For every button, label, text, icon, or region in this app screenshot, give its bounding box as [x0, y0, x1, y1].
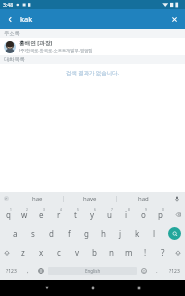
button[interactable]: 9 [135, 205, 152, 224]
button[interactable]: have [64, 192, 116, 205]
button[interactable]: Expand [0, 192, 12, 205]
staticText: 대화목록 [4, 56, 25, 63]
button[interactable]: h [95, 224, 112, 243]
button[interactable]: k [129, 224, 146, 243]
staticText: 검색 결과가 없습니다. [66, 69, 119, 76]
staticText: n [109, 247, 114, 258]
button[interactable]: Clear [163, 9, 185, 29]
staticText: d [49, 228, 54, 239]
button[interactable]: 0 [152, 205, 169, 224]
button[interactable]: Recents [116, 280, 162, 296]
staticText: k [135, 228, 140, 239]
button[interactable]: ! [137, 243, 154, 262]
button[interactable]: c [50, 243, 68, 262]
button[interactable]: n [103, 243, 120, 262]
button[interactable]: English [48, 267, 137, 275]
staticText: 홍배연 [과장] [19, 39, 53, 47]
button[interactable]: Language [34, 262, 48, 280]
button[interactable]: j [112, 224, 129, 243]
button[interactable]: Back [24, 280, 70, 296]
button[interactable]: Home [70, 280, 116, 296]
staticText: z [21, 247, 25, 258]
staticText: 4 [60, 208, 62, 212]
button[interactable]: z [14, 243, 32, 262]
staticText: r [57, 209, 61, 220]
staticText: ! [144, 247, 147, 258]
staticText: q [6, 209, 11, 220]
staticText: 9 [145, 208, 147, 212]
staticText: ?123 [6, 268, 17, 275]
button[interactable]: g [78, 224, 95, 243]
staticText: , [27, 267, 29, 275]
button[interactable]: 4 [50, 205, 67, 224]
staticText: > [5, 196, 8, 201]
staticText: g [84, 228, 89, 239]
button[interactable]: Shift [0, 243, 14, 262]
button[interactable]: ?123 [0, 262, 22, 280]
staticText: have [83, 195, 97, 203]
button[interactable]: Delete [169, 205, 185, 224]
button[interactable]: v [68, 243, 86, 262]
staticText: e [39, 209, 44, 220]
button[interactable]: l [146, 224, 163, 243]
staticText: 3 [43, 208, 45, 212]
staticText: b [92, 247, 97, 258]
button[interactable]: f [60, 224, 78, 243]
staticText: o [141, 209, 146, 220]
staticText: p [158, 209, 163, 220]
staticText: kak [20, 14, 163, 24]
staticText: v [75, 247, 80, 258]
staticText: 주소록 [4, 30, 20, 37]
staticText: a [13, 228, 18, 239]
button[interactable]: hae [12, 192, 63, 205]
staticText: 5 [77, 208, 79, 212]
staticText: y [90, 209, 95, 220]
staticText: hae [32, 195, 43, 203]
staticText: h [101, 228, 106, 239]
staticText: j [119, 228, 122, 239]
button[interactable]: m [120, 243, 137, 262]
staticText: f [68, 228, 71, 239]
button[interactable]: 3 [33, 205, 50, 224]
button[interactable]: 7 [101, 205, 118, 224]
button[interactable]: 홍배연 [과장] [0, 38, 185, 55]
button[interactable]: 8 [118, 205, 135, 224]
button[interactable]: 5 [67, 205, 84, 224]
button[interactable]: 1 [0, 205, 16, 224]
staticText: English [85, 268, 101, 274]
staticText: ?123 [169, 268, 180, 275]
staticText: w [21, 209, 28, 220]
button[interactable]: had [117, 192, 169, 205]
button[interactable]: x [32, 243, 50, 262]
staticText: 1 [10, 208, 12, 212]
button[interactable]: b [86, 243, 103, 262]
staticText: 0 [162, 208, 164, 212]
staticText: . [156, 267, 158, 275]
staticText: x [39, 247, 44, 258]
button[interactable]: 6 [84, 205, 101, 224]
button[interactable]: 2 [16, 205, 33, 224]
button[interactable]: ?123 [163, 262, 185, 280]
staticText: c [57, 247, 61, 258]
staticText: 2 [26, 208, 28, 212]
staticText: 8 [128, 208, 130, 212]
staticText: l [153, 228, 156, 239]
button[interactable]: Shift [171, 243, 185, 262]
staticText: t [74, 209, 77, 220]
button[interactable]: ? [154, 243, 171, 262]
button[interactable]: s [24, 224, 42, 243]
staticText: m [125, 247, 133, 258]
button[interactable]: Voice input [169, 192, 185, 205]
button[interactable]: Search [163, 224, 185, 243]
staticText: s [31, 228, 35, 239]
staticText: (주)한국로-한국로-소프트개발부-영업팀 [19, 48, 93, 54]
button[interactable]: d [42, 224, 60, 243]
staticText: i [125, 209, 128, 220]
button[interactable]: Back [0, 9, 20, 29]
staticText: u [107, 209, 112, 220]
button[interactable]: Emoji [137, 262, 151, 280]
staticText: 3:48 [3, 1, 14, 8]
button[interactable]: , [22, 262, 34, 280]
button[interactable]: a [6, 224, 24, 243]
